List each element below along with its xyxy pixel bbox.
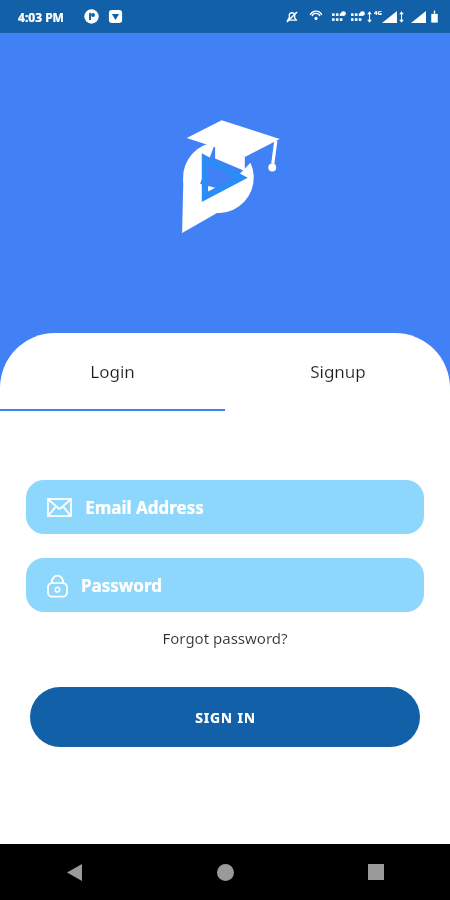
button[interactable]: Recent apps (354, 850, 398, 894)
button[interactable]: SIGN IN (30, 687, 420, 747)
button[interactable]: Password (26, 558, 424, 612)
button[interactable]: Back (52, 850, 96, 894)
staticText: Signup (310, 360, 366, 383)
button[interactable]: Home (203, 850, 247, 894)
staticText: 4G (374, 9, 382, 17)
button[interactable]: Email Address (26, 480, 424, 534)
staticText: Email Address (85, 496, 204, 519)
staticText: 4:03 PM (18, 9, 64, 25)
staticText: Password (81, 574, 162, 597)
button[interactable]: Signup (225, 353, 450, 389)
staticText: SIGN IN (195, 708, 256, 727)
staticText: Login (90, 360, 135, 383)
button[interactable]: Forgot password? (150, 624, 300, 652)
staticText: Forgot password? (162, 628, 288, 648)
button[interactable]: Login (0, 353, 225, 389)
